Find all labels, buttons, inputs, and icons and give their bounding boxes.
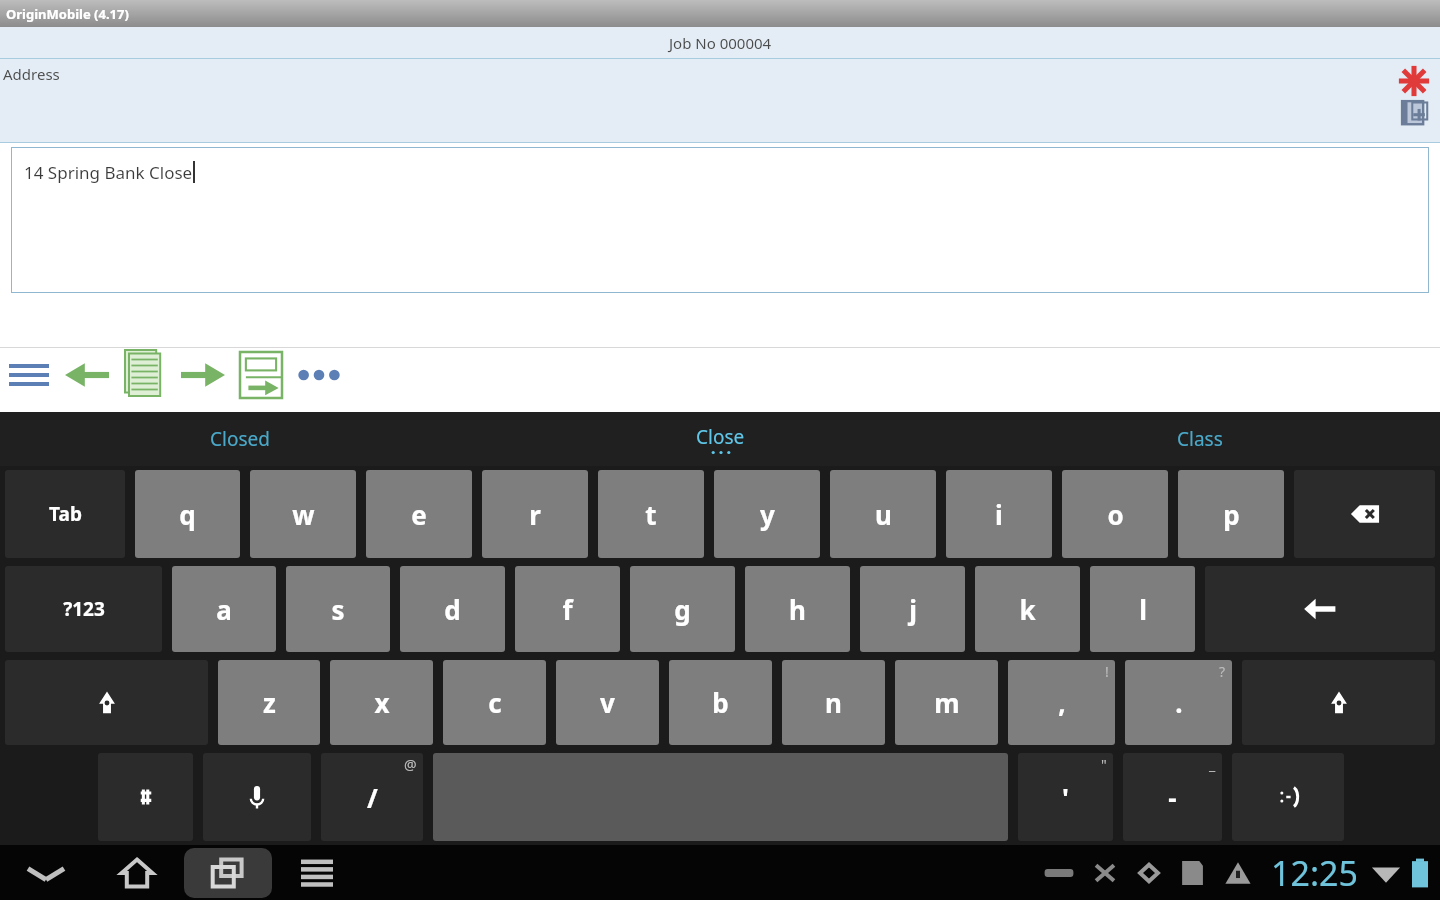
button[interactable]: c [443,660,546,745]
button[interactable]: m [895,660,998,745]
staticText: h [789,592,806,627]
button[interactable]: shift [1242,660,1435,745]
button[interactable]: e [366,470,472,558]
button[interactable]: . [1125,660,1232,745]
staticText: v [600,685,615,720]
button[interactable]: z [218,660,320,745]
staticText: Job No 000004 [669,33,772,53]
button[interactable]: w [250,470,356,558]
button[interactable]: Closed [0,412,480,466]
button[interactable]: Options menu [274,845,360,900]
button[interactable]: , [1008,660,1115,745]
staticText: Address [3,64,60,84]
staticText: s [331,592,345,627]
button[interactable]: 14 Spring Bank Close [11,147,1429,293]
button[interactable]: Home [92,845,182,900]
staticText: 12:25 [1271,850,1358,896]
staticText: n [825,685,842,720]
button[interactable]: o [1062,470,1168,558]
button[interactable]: Required [1396,63,1432,99]
staticText: ? [1219,662,1226,681]
staticText: x [374,685,390,720]
button[interactable]: Recent apps [184,848,272,898]
staticText: j [909,592,917,627]
staticText: Close [696,424,745,450]
button[interactable]: / [321,753,423,841]
button[interactable]: g [630,566,735,652]
staticText: y [760,497,775,532]
staticText: d [444,592,461,627]
staticText: w [292,497,315,532]
staticText: f [562,592,573,627]
staticText: Tab [49,501,82,527]
button[interactable]: Add note [1398,95,1432,129]
button[interactable]: p [1178,470,1284,558]
staticText: Closed [210,426,270,452]
staticText: r [529,497,541,532]
staticText: o [1107,497,1124,532]
staticText: g [674,592,691,627]
button[interactable]: u [830,470,936,558]
button[interactable]: h [745,566,850,652]
button[interactable]: s [286,566,390,652]
button[interactable]: t [598,470,704,558]
staticText: l [1139,592,1147,627]
button[interactable]: Hide keyboard [0,845,92,900]
button[interactable]: v [556,660,659,745]
button[interactable]: l [1090,566,1195,652]
staticText: i [995,497,1003,532]
button[interactable]: Submit [232,347,290,403]
button[interactable]: Tab [5,470,125,558]
button[interactable]: back [1294,470,1435,558]
button[interactable]: i [946,470,1052,558]
staticText: ! [1105,662,1109,681]
button[interactable]: Documents [116,347,174,403]
staticText: b [712,685,729,720]
button[interactable]: More [290,347,348,403]
button[interactable]: Class [960,412,1440,466]
button[interactable]: ' [1018,753,1113,841]
staticText: @ [404,755,417,774]
button[interactable]: j [860,566,965,652]
staticText: k [1019,592,1036,627]
button[interactable]: Next [174,347,232,403]
staticText: p [1223,497,1240,532]
staticText: _ [1209,755,1216,774]
button[interactable]: enter [1205,566,1435,652]
button[interactable]: Previous [58,347,116,403]
button[interactable]: b [669,660,772,745]
staticText: , [1058,685,1066,720]
button[interactable]: shift [5,660,208,745]
button[interactable]: Close [480,412,960,466]
staticText: u [875,497,892,532]
staticText: " [1101,755,1107,774]
staticText: Class [1177,426,1223,452]
staticText: a [216,592,232,627]
button[interactable]: n [782,660,885,745]
button[interactable]: ?123 [5,566,162,652]
button[interactable]: q [135,470,240,558]
staticText: e [411,497,427,532]
staticText: t [645,497,657,532]
staticText: / [367,780,378,815]
button[interactable]: x [330,660,433,745]
button[interactable]: y [714,470,820,558]
staticText: 14 Spring Bank Close [24,161,193,184]
staticText: ?123 [63,596,105,622]
button[interactable]: f [515,566,620,652]
button[interactable]: - [1123,753,1222,841]
button[interactable]: mic [203,753,311,841]
staticText: z [263,685,276,720]
staticText: . [1175,685,1183,720]
button[interactable]: d [400,566,505,652]
button[interactable]: Menu [0,347,58,403]
staticText: c [488,685,502,720]
button[interactable]: grid [98,753,193,841]
button[interactable]: a [172,566,276,652]
button[interactable]: r [482,470,588,558]
staticText: q [179,497,196,532]
button[interactable]: smile [1232,753,1344,841]
button[interactable]: k [975,566,1080,652]
staticText: - [1168,780,1177,815]
